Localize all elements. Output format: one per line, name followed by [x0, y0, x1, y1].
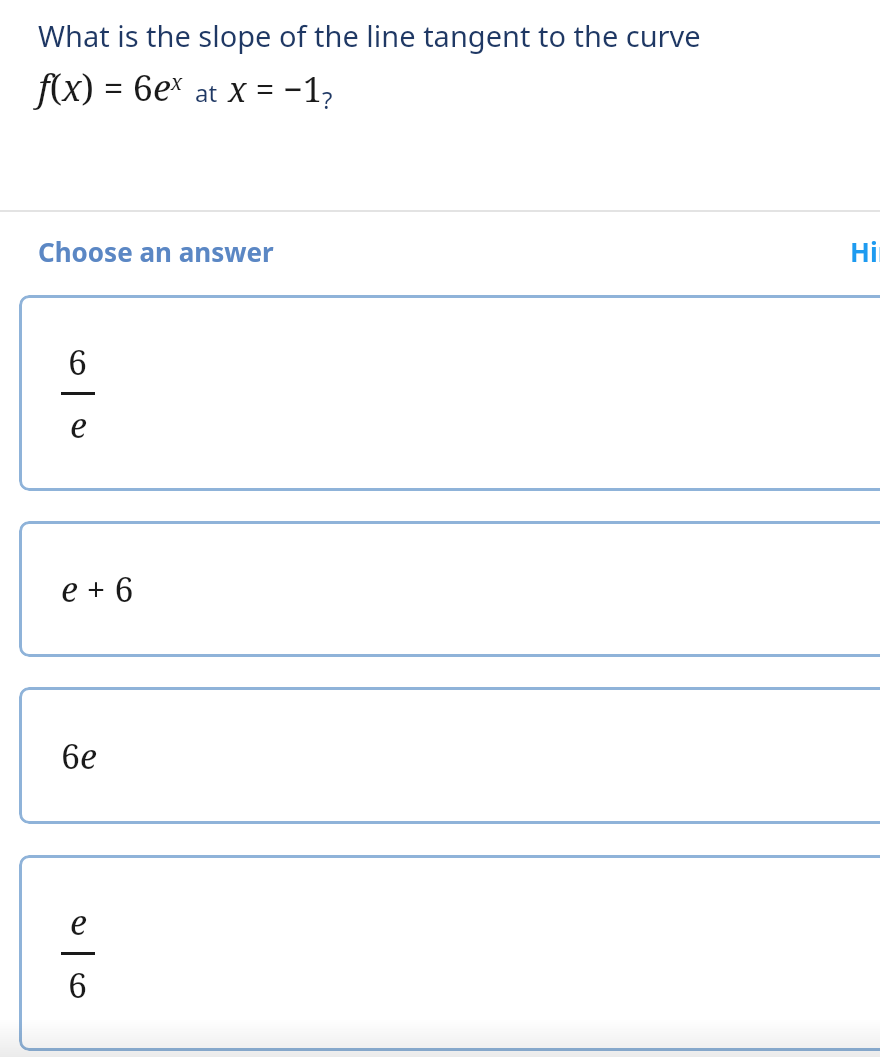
staticText: e: [70, 899, 87, 945]
button[interactable]: e: [19, 855, 880, 1051]
staticText: e + 6: [61, 566, 134, 612]
button[interactable]: Hint: [850, 234, 880, 269]
button[interactable]: Choose an answer: [38, 234, 274, 269]
staticText: f(x) = 6ex: [38, 63, 183, 112]
staticText: e: [70, 402, 87, 448]
staticText: 6e: [61, 733, 97, 779]
staticText: 6: [68, 339, 88, 385]
staticText: 6: [68, 962, 88, 1008]
staticText: What is the slope of the line tangent to…: [38, 16, 701, 55]
button[interactable]: 6: [19, 295, 880, 491]
staticText: ?: [322, 83, 333, 116]
button[interactable]: e + 6: [19, 521, 880, 657]
staticText: at: [195, 76, 218, 109]
staticText: x = −1: [228, 66, 322, 112]
button[interactable]: 6e: [19, 687, 880, 824]
